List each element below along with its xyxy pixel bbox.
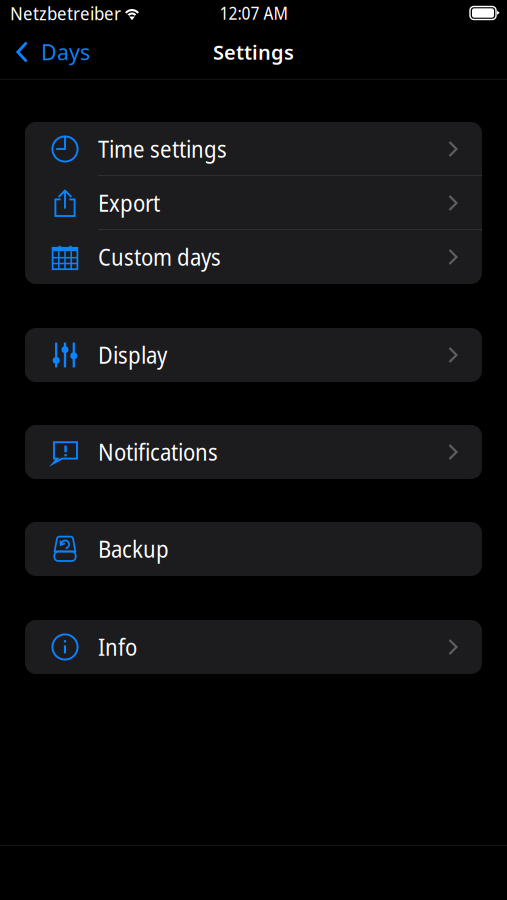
button[interactable]: Custom days (25, 230, 482, 284)
button[interactable]: Info (25, 620, 482, 674)
staticText: Notifications (98, 437, 218, 467)
button[interactable]: Display (25, 328, 482, 382)
staticText: Info (98, 632, 137, 662)
button[interactable]: Backup (25, 522, 482, 576)
button[interactable]: Export (25, 176, 482, 230)
staticText: Netzbetreiber (10, 0, 121, 26)
staticText: Settings (213, 39, 294, 65)
button[interactable]: Time settings (25, 122, 482, 176)
staticText: Display (98, 340, 167, 370)
staticText: 12:07 AM (219, 1, 287, 25)
staticText: Time settings (98, 134, 227, 164)
staticText: Backup (98, 534, 169, 564)
staticText: Days (41, 38, 90, 66)
button[interactable]: Days (0, 30, 102, 74)
staticText: Export (98, 188, 160, 218)
staticText: Custom days (98, 242, 221, 272)
button[interactable]: Notifications (25, 425, 482, 479)
